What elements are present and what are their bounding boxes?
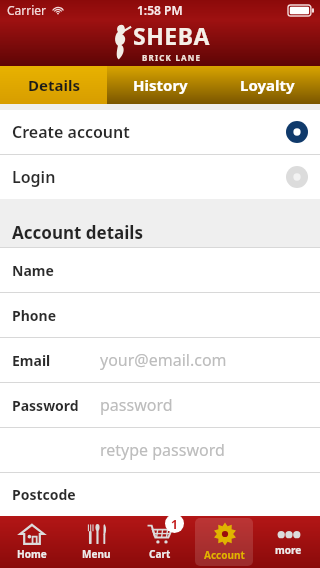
button[interactable]: Name — [0, 248, 320, 292]
staticText: Login — [12, 166, 56, 188]
staticText: Email — [12, 351, 51, 370]
staticText: password — [100, 394, 173, 416]
staticText: History — [133, 75, 188, 95]
button[interactable]: Account — [192, 516, 256, 568]
staticText: 1 — [171, 516, 178, 532]
button[interactable]: Password — [0, 383, 320, 427]
staticText: Phone — [12, 306, 57, 325]
staticText: Account — [204, 548, 245, 562]
staticText: Loyalty — [240, 75, 295, 95]
staticText: Details — [28, 75, 80, 95]
button[interactable]: Create account — [0, 110, 320, 154]
button[interactable]: retype password — [0, 428, 320, 472]
button[interactable]: Loyalty — [214, 66, 320, 104]
staticText: Carrier — [7, 2, 47, 18]
staticText: SHEBA — [133, 20, 210, 51]
staticText: Menu — [82, 547, 111, 561]
staticText: Home — [17, 547, 47, 561]
staticText: Cart — [149, 547, 171, 561]
staticText: 1:58 PM — [137, 2, 183, 18]
staticText: more — [275, 543, 302, 557]
button[interactable]: Phone — [0, 293, 320, 337]
button[interactable]: 1 — [128, 516, 192, 568]
button[interactable]: History — [107, 66, 214, 104]
button[interactable]: Menu — [64, 516, 128, 568]
staticText: BRICK LANE — [142, 52, 202, 63]
button[interactable]: more — [256, 516, 320, 568]
staticText: Create account — [12, 121, 130, 143]
button[interactable]: Home — [0, 516, 64, 568]
staticText: Name — [12, 261, 54, 280]
staticText: your@email.com — [100, 349, 227, 371]
staticText: Password — [12, 396, 79, 415]
button[interactable]: Email — [0, 338, 320, 382]
staticText: Postcode — [12, 485, 76, 504]
staticText: retype password — [100, 439, 225, 461]
button[interactable]: Details — [0, 66, 107, 104]
button[interactable]: Postcode — [0, 473, 320, 516]
button[interactable]: Login — [0, 155, 320, 199]
staticText: Account details — [12, 221, 143, 244]
